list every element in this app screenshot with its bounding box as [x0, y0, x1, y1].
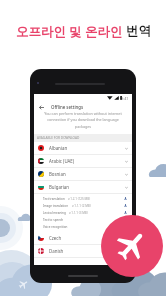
button[interactable]: Bosnian [34, 168, 132, 180]
staticText: You can perform translation without inte… [44, 111, 122, 129]
staticText: Albanian [49, 145, 68, 151]
button[interactable]: Download [123, 210, 128, 215]
staticText: v.1.2.1 (125 MB) [68, 197, 91, 201]
staticText: Arabic (UAE) [49, 158, 75, 164]
button[interactable]: Download [123, 203, 128, 208]
button[interactable]: Back [37, 103, 46, 112]
staticText: Lexical meaning [43, 211, 66, 215]
staticText: 번역 [126, 23, 151, 39]
button[interactable]: Airplane mode [101, 215, 163, 277]
button[interactable]: Danish [34, 245, 132, 257]
staticText: 9:41 [121, 96, 129, 101]
button[interactable]: Bulgarian [34, 181, 132, 193]
staticText: 오프라인 및 온라인 [16, 23, 126, 40]
staticText: Image translation [43, 204, 69, 208]
staticText: AVAILABLE FOR DOWNLOAD [37, 136, 80, 140]
staticText: Czech [49, 235, 62, 241]
staticText: Voice recognition [43, 225, 68, 229]
staticText: v.1.1.1 (2 MB) [72, 204, 91, 208]
button[interactable]: Czech [34, 232, 132, 244]
staticText: Danish [49, 248, 64, 254]
staticText: v.1.1.1 (3 MB) [69, 211, 88, 215]
staticText: Offline settings [51, 104, 84, 110]
staticText: Bulgarian [49, 184, 69, 190]
staticText: Text to speech [43, 218, 64, 222]
staticText: Text translation [43, 197, 65, 201]
staticText: Bosnian [49, 171, 66, 177]
button[interactable]: Download [123, 196, 128, 201]
button[interactable]: Albanian [34, 142, 132, 154]
button[interactable]: Arabic (UAE) [34, 155, 132, 167]
